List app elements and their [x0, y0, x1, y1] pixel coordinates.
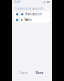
button[interactable]: Done — [36, 71, 44, 75]
button[interactable]: Wallet — [14, 17, 50, 23]
staticText: Done — [36, 71, 44, 75]
staticText: 9:41 — [14, 0, 21, 4]
staticText: Bank account — [25, 12, 42, 16]
staticText: Cancel — [19, 71, 28, 75]
button[interactable]: Cancel — [19, 71, 28, 75]
staticText: Wallet — [24, 18, 32, 22]
staticText: Connected accounts — [15, 7, 43, 10]
button[interactable]: Bank account — [14, 11, 50, 17]
